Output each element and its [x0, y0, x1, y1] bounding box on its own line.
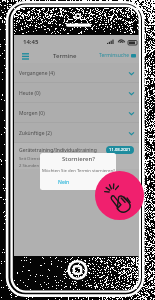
staticText: Terminsuche	[99, 52, 130, 59]
staticText: Zukünftige (2)	[19, 130, 52, 137]
staticText: Stornieren?	[62, 155, 95, 163]
staticText: 11.03.2021	[109, 147, 131, 153]
staticText: Nein	[58, 179, 70, 186]
button[interactable]: Ja	[88, 175, 116, 190]
staticText: Vergangene (4)	[19, 70, 55, 77]
button[interactable]: Morgen (0)	[14, 103, 139, 123]
staticText: 14:45	[23, 38, 39, 46]
staticText: Heute (0)	[19, 90, 41, 97]
staticText: 2 Stunden	[19, 163, 39, 169]
button[interactable]: Terminsuche	[99, 52, 135, 59]
button[interactable]: Vergangene (4)	[14, 63, 139, 83]
other: Tap indicator	[95, 171, 144, 220]
staticText: Termine	[53, 52, 77, 60]
staticText: Ja	[100, 179, 105, 186]
button[interactable]: Heute (0)	[14, 83, 139, 103]
staticText: Möchten Sie den Termin stornieren?	[42, 167, 115, 173]
staticText: Seit Dienstag, 11.03.2021	[19, 156, 69, 162]
staticText: Gerätetraining/Individualtraining	[19, 147, 97, 154]
button[interactable]: Zukünftige (2)	[14, 123, 139, 143]
button[interactable]: Gerätetraining/Individualtraining	[14, 143, 139, 169]
staticText: Morgen (0)	[19, 110, 45, 117]
button[interactable]: Nein	[40, 175, 88, 190]
button[interactable]: Menu	[19, 50, 31, 62]
